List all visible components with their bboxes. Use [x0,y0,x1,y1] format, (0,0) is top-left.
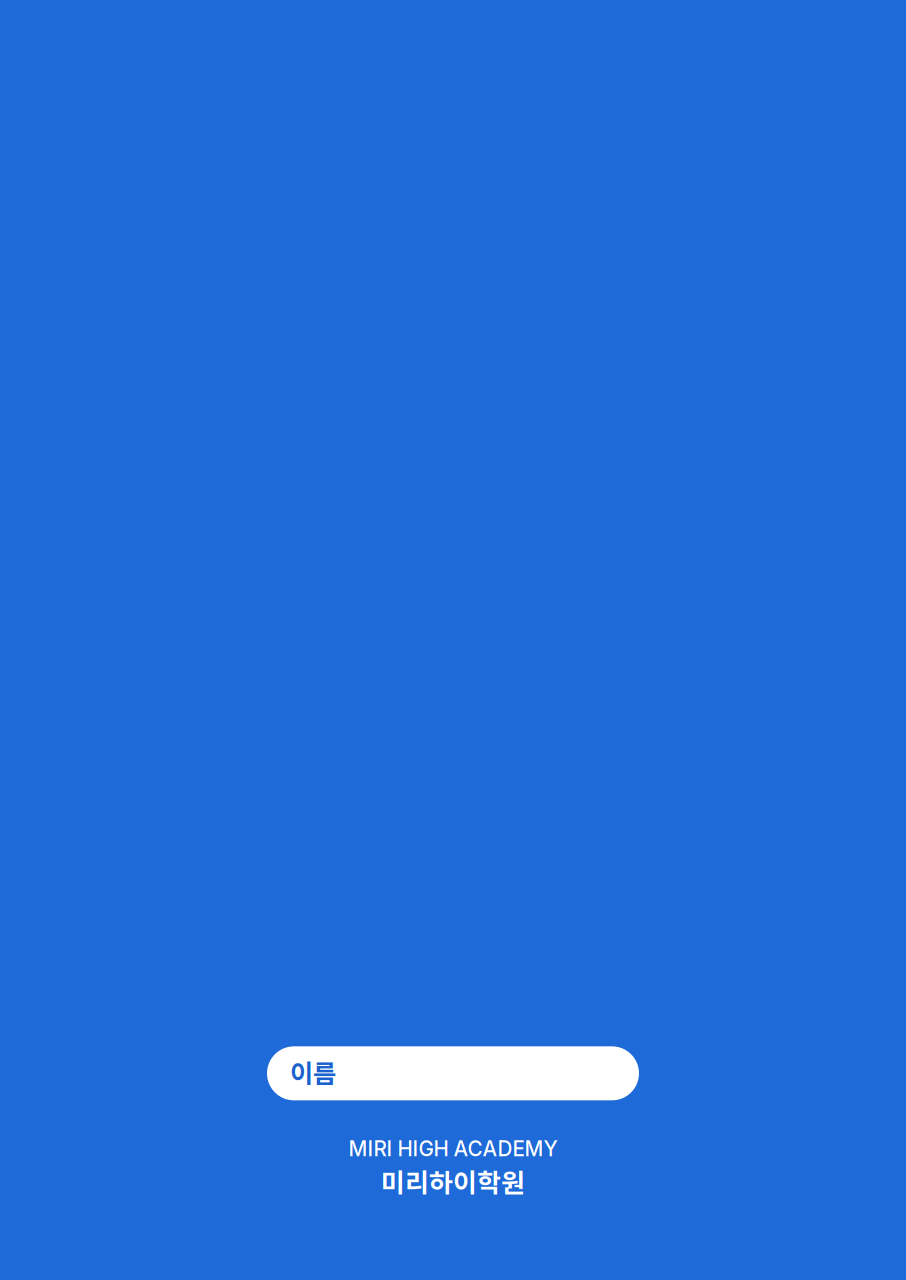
button[interactable]: 이름 [267,1046,639,1100]
staticText: 미리하이학원 [381,1162,525,1200]
staticText: 이름 [290,1053,336,1090]
staticText: MIRI HIGH ACADEMY [348,1136,557,1161]
